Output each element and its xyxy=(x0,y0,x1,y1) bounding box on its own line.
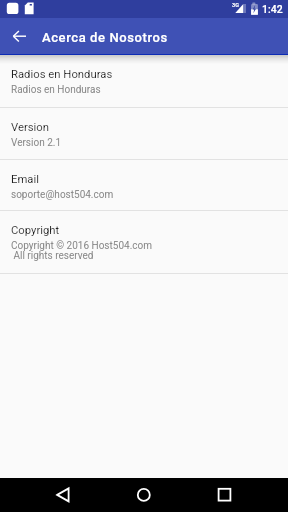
staticText: Copyright xyxy=(11,224,60,237)
staticText: Version xyxy=(11,121,50,134)
button[interactable]: Back xyxy=(0,18,288,55)
button[interactable]: Copyright xyxy=(0,211,288,274)
button[interactable]: Home xyxy=(124,478,164,512)
staticText: Acerca de Nosotros xyxy=(42,30,168,45)
button[interactable]: Version xyxy=(0,108,288,160)
staticText: soporte@host504.com xyxy=(11,189,114,201)
staticText: Version 2.1 xyxy=(11,137,62,149)
button[interactable]: Radios en Honduras xyxy=(0,55,288,108)
button[interactable]: Email xyxy=(0,160,288,211)
staticText: Copyright © 2016 Host504.com xyxy=(11,240,152,252)
staticText: 3G xyxy=(232,2,239,8)
button[interactable]: Back xyxy=(43,478,83,512)
staticText: 1:42 xyxy=(262,3,283,15)
staticText: Radios en Honduras xyxy=(11,84,101,96)
staticText: Email xyxy=(11,173,39,186)
staticText: All rights reserved xyxy=(11,250,94,262)
button[interactable]: Recent apps xyxy=(205,478,245,512)
staticText: Radios en Honduras xyxy=(11,68,113,81)
